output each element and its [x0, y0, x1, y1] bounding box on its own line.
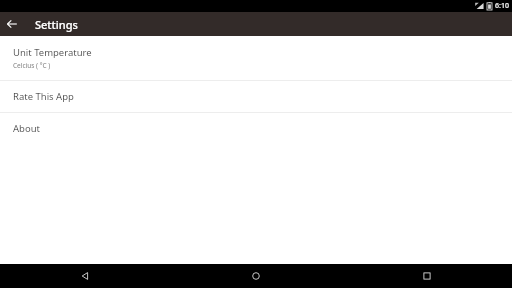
button[interactable]: Rate This App	[0, 81, 512, 112]
staticText: Celcius ( °C )	[13, 61, 51, 70]
button[interactable]: Home	[244, 264, 268, 288]
staticText: Settings	[35, 17, 78, 32]
button[interactable]: Unit Temperature	[0, 36, 512, 80]
staticText: 6:10	[495, 1, 509, 11]
staticText: About	[13, 122, 40, 135]
button[interactable]: Back	[73, 264, 97, 288]
button[interactable]: About	[0, 113, 512, 144]
staticText: Rate This App	[13, 90, 74, 103]
staticText: Unit Temperature	[13, 46, 92, 59]
button[interactable]: Back	[0, 12, 24, 36]
button[interactable]: Recent apps	[415, 264, 439, 288]
